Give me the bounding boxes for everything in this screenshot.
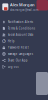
staticText: Help (8, 39, 15, 43)
staticText: Password Reset (8, 46, 29, 49)
staticText: Notification Alerts (8, 20, 33, 24)
staticText: Log out (8, 65, 19, 68)
button[interactable]: ? (0, 38, 48, 44)
staticText: Alex Morgan (10, 2, 35, 7)
staticText: Terms & Conditions (8, 27, 35, 30)
button[interactable]: Alex Morgan (0, 0, 48, 12)
staticText: alex.morgan@mail.com (10, 8, 38, 12)
button[interactable]: Password Reset (0, 44, 48, 51)
button[interactable]: Terms & Conditions (0, 25, 48, 32)
staticText: Social Account Data (8, 33, 33, 36)
button[interactable]: Manage Languages (0, 51, 48, 57)
staticText: Manage Languages (8, 52, 33, 56)
button[interactable]: Notification Alerts (0, 19, 48, 25)
button[interactable]: Social Account Data (0, 32, 48, 38)
button[interactable]: Share Our App (0, 57, 48, 64)
button[interactable]: Log out (0, 64, 48, 70)
staticText: ? (3, 39, 4, 43)
staticText: Share Our App (8, 59, 28, 62)
